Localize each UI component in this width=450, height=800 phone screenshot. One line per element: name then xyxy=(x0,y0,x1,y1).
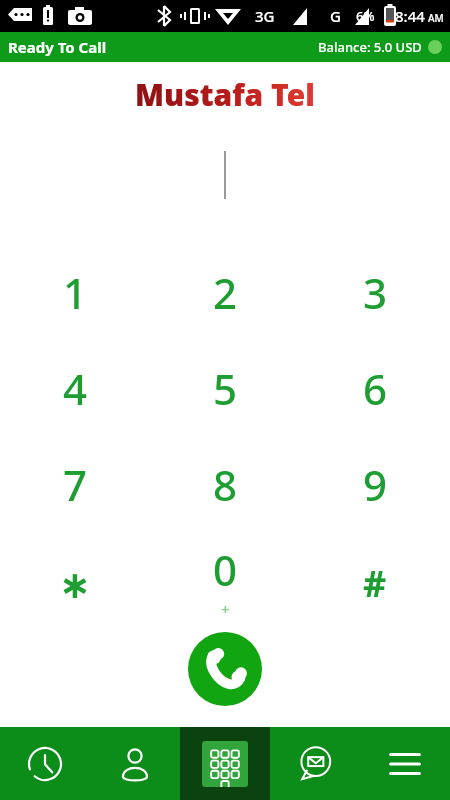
staticText: + xyxy=(221,599,230,619)
staticText: 3G xyxy=(255,6,275,26)
button[interactable]: Recent calls xyxy=(0,727,90,800)
staticText: ∗ xyxy=(59,563,91,607)
button[interactable]: 1 xyxy=(0,244,150,340)
staticText: 3 xyxy=(363,264,388,321)
button[interactable]: 7 xyxy=(0,436,150,532)
staticText: Balance: 5.0 USD xyxy=(318,38,422,56)
staticText: 4 xyxy=(63,360,88,417)
button[interactable]: 5 xyxy=(150,340,300,436)
button[interactable]: 8 xyxy=(150,436,300,532)
staticText: 8:44 xyxy=(395,6,425,26)
button[interactable]: 2 xyxy=(150,244,300,340)
staticText: 6% xyxy=(356,7,375,25)
staticText: # xyxy=(363,559,387,608)
button[interactable]: # xyxy=(300,532,450,628)
button[interactable]: Menu xyxy=(360,727,450,800)
staticText: 6 xyxy=(363,360,388,417)
button[interactable]: Messages xyxy=(270,727,360,800)
button[interactable]: 4 xyxy=(0,340,150,436)
staticText: 0 xyxy=(213,541,238,598)
button[interactable]: Contacts xyxy=(90,727,180,800)
staticText: AM xyxy=(428,11,444,25)
button[interactable]: 0 xyxy=(150,532,300,628)
staticText: G xyxy=(330,6,341,26)
staticText: 5 xyxy=(213,360,238,417)
button[interactable]: 9 xyxy=(300,436,450,532)
button[interactable]: 3 xyxy=(300,244,450,340)
button[interactable]: Keypad xyxy=(180,727,270,800)
staticText: 1 xyxy=(63,264,88,321)
button[interactable]: ∗ xyxy=(0,532,150,628)
staticText: 2 xyxy=(213,264,238,321)
button[interactable]: Call xyxy=(188,632,262,706)
staticText: 7 xyxy=(63,456,88,513)
staticText: 8 xyxy=(213,456,238,513)
button[interactable]: 6 xyxy=(300,340,450,436)
staticText: 9 xyxy=(363,456,388,513)
staticText: Ready To Call xyxy=(8,37,107,57)
staticText: Mustafa Tel xyxy=(135,74,315,115)
